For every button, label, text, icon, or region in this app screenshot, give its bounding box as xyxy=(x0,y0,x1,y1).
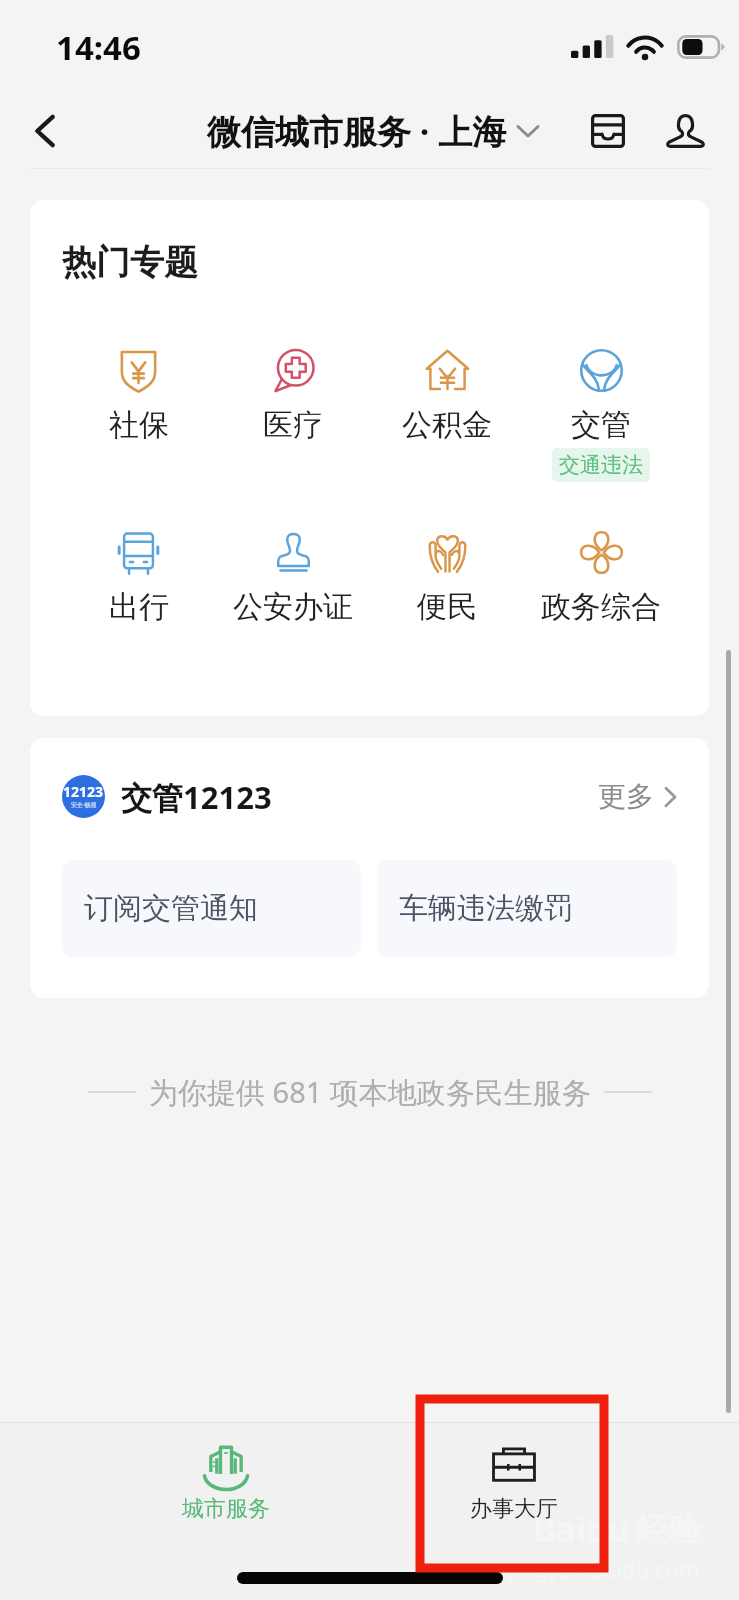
button[interactable]: 医疗 xyxy=(216,348,370,444)
button[interactable]: 办事大厅 xyxy=(370,1422,658,1523)
staticText: 14:46 xyxy=(56,25,141,70)
staticText: 便民 xyxy=(417,588,477,626)
staticText: 热门专题 xyxy=(62,241,198,284)
button[interactable]: 城市服务 xyxy=(82,1422,370,1523)
staticText: 交管12123 xyxy=(121,776,272,818)
staticText: 公安办证 xyxy=(233,588,353,626)
staticText: 订阅交管通知 xyxy=(84,890,258,927)
button[interactable]: 公积金 xyxy=(370,348,524,444)
button[interactable]: 车辆违法缴罚 xyxy=(377,860,677,957)
button[interactable]: 交管 xyxy=(524,348,678,482)
button[interactable]: Archive xyxy=(580,103,636,159)
staticText: 为你提供 681 项本地政务民生服务 xyxy=(149,1072,591,1112)
staticText: 城市服务 xyxy=(182,1495,270,1523)
button[interactable]: 社保 xyxy=(61,348,216,444)
staticText: 安全·畅通 xyxy=(71,801,97,809)
staticText: 公积金 xyxy=(402,406,492,444)
button[interactable]: 出行 xyxy=(61,530,216,626)
staticText: 微信城市服务 · 上海 xyxy=(207,108,507,154)
staticText: 交管 xyxy=(571,406,631,444)
button[interactable]: Profile xyxy=(657,103,713,159)
staticText: 12123 xyxy=(63,782,104,801)
staticText: 车辆违法缴罚 xyxy=(399,890,573,927)
staticText: 更多 xyxy=(598,779,654,814)
button[interactable]: 公安办证 xyxy=(216,530,370,626)
staticText: Baidu xyxy=(533,1506,630,1552)
button[interactable]: 政务综合 xyxy=(524,530,678,626)
staticText: 出行 xyxy=(109,588,169,626)
staticText: 办事大厅 xyxy=(470,1495,558,1523)
staticText: 政务综合 xyxy=(541,588,661,626)
staticText: 社保 xyxy=(109,406,169,444)
staticText: 交通违法 xyxy=(559,452,643,478)
staticText: 医疗 xyxy=(263,406,323,444)
button[interactable]: 订阅交管通知 xyxy=(62,860,361,957)
staticText: jingyan.baidu.com xyxy=(509,1554,700,1584)
button[interactable]: 便民 xyxy=(370,530,524,626)
button[interactable]: Back xyxy=(18,104,72,158)
button[interactable]: 更多 xyxy=(598,779,677,814)
